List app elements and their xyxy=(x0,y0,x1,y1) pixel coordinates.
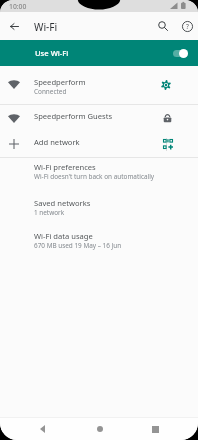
staticText: 10:00 xyxy=(9,2,27,11)
staticText: Wi-Fi data usage xyxy=(34,231,93,241)
button[interactable]: Network settings xyxy=(150,69,182,101)
staticText: Saved networks xyxy=(34,198,91,208)
button[interactable]: Help xyxy=(175,14,198,38)
button[interactable]: Home xyxy=(85,418,114,440)
staticText: Wi-Fi preferences xyxy=(34,162,96,172)
button[interactable]: Search xyxy=(151,14,175,38)
button[interactable]: Back xyxy=(2,14,26,38)
button[interactable]: Add network with QR code xyxy=(153,131,183,157)
button[interactable]: Recent apps xyxy=(141,418,170,440)
staticText: Wi-Fi xyxy=(34,20,58,34)
button[interactable]: Use Wi-Fi xyxy=(0,40,198,66)
staticText: Speedperform xyxy=(34,77,86,87)
button[interactable]: Secured network xyxy=(152,105,182,131)
staticText: Connected xyxy=(34,87,67,96)
button[interactable]: Back xyxy=(28,418,57,440)
staticText: Speedperform Guests xyxy=(34,111,113,121)
staticText: ? xyxy=(186,22,189,31)
button[interactable]: Wi-Fi data usage xyxy=(0,227,198,260)
button[interactable]: Add network xyxy=(0,131,198,157)
staticText: 1 network xyxy=(34,208,65,217)
staticText: Add network xyxy=(34,137,80,147)
staticText: Wi-Fi doesn't turn back on automatically xyxy=(34,172,155,181)
staticText: Use Wi-Fi xyxy=(35,48,69,58)
button[interactable]: Wi-Fi preferences xyxy=(0,158,198,194)
button[interactable]: Speedperform xyxy=(0,66,198,104)
staticText: 670 MB used 19 May – 16 Jun xyxy=(34,241,122,250)
button[interactable]: Speedperform Guests xyxy=(0,105,198,131)
button[interactable]: Saved networks xyxy=(0,194,198,227)
